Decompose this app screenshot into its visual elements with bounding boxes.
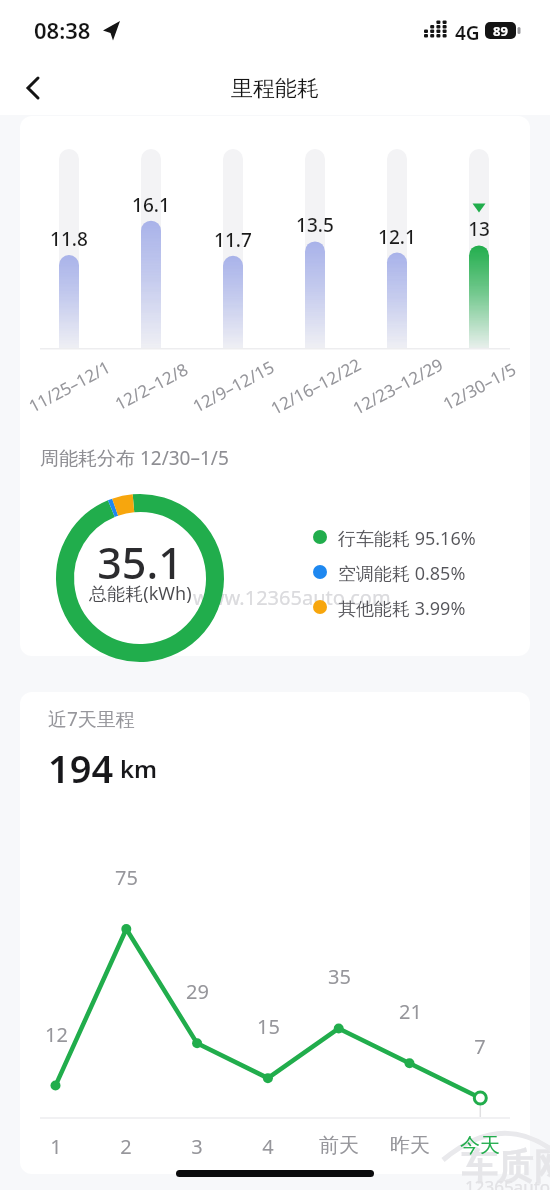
- staticText: 7: [474, 1033, 486, 1059]
- staticText: 12/30–1/5: [438, 357, 520, 415]
- staticText: 13: [468, 216, 490, 242]
- staticText: 4G: [455, 20, 480, 46]
- staticText: 16.1: [132, 192, 170, 218]
- staticText: 75: [115, 864, 138, 890]
- staticText: 近7天里程: [48, 706, 135, 732]
- staticText: www.12365auto.com: [193, 584, 391, 611]
- staticText: 2: [120, 1133, 132, 1157]
- staticText: 周能耗分布 12/30–1/5: [40, 445, 229, 471]
- staticText: 12/2–12/8: [110, 357, 192, 415]
- staticText: 89: [493, 22, 508, 39]
- staticText: 12365auto.com: [465, 1175, 550, 1190]
- staticText: 194: [48, 742, 114, 794]
- staticText: 15: [257, 1013, 280, 1039]
- staticText: 总能耗(kWh): [89, 581, 192, 606]
- staticText: 昨天: [390, 1133, 430, 1157]
- staticText: 12: [45, 1021, 68, 1047]
- button[interactable]: [12, 70, 56, 106]
- staticText: 29: [186, 978, 209, 1004]
- staticText: 1: [50, 1133, 62, 1157]
- staticText: 今天: [460, 1133, 500, 1157]
- staticText: 前天: [319, 1133, 359, 1157]
- staticText: 13.5: [296, 212, 334, 238]
- staticText: 12/9–12/15: [188, 355, 278, 418]
- staticText: 空调能耗 0.85%: [338, 561, 466, 586]
- staticText: 12/16–12/22: [267, 353, 365, 420]
- staticText: 11.8: [50, 226, 88, 252]
- staticText: 11.7: [214, 227, 252, 253]
- staticText: 21: [399, 998, 422, 1024]
- staticText: 行车能耗 95.16%: [338, 526, 476, 551]
- staticText: 3: [191, 1133, 203, 1157]
- staticText: km: [120, 752, 158, 785]
- staticText: 35.1: [97, 533, 183, 585]
- staticText: 35: [328, 963, 351, 989]
- staticText: 11/25–12/1: [24, 355, 114, 418]
- staticText: 车质网: [461, 1144, 550, 1189]
- staticText: 里程能耗: [231, 75, 319, 103]
- staticText: 12.1: [378, 224, 416, 250]
- staticText: 4: [262, 1133, 274, 1157]
- staticText: 08:38: [34, 15, 91, 45]
- staticText: 12/23–12/29: [349, 353, 447, 420]
- staticText: 其他能耗 3.99%: [338, 596, 466, 621]
